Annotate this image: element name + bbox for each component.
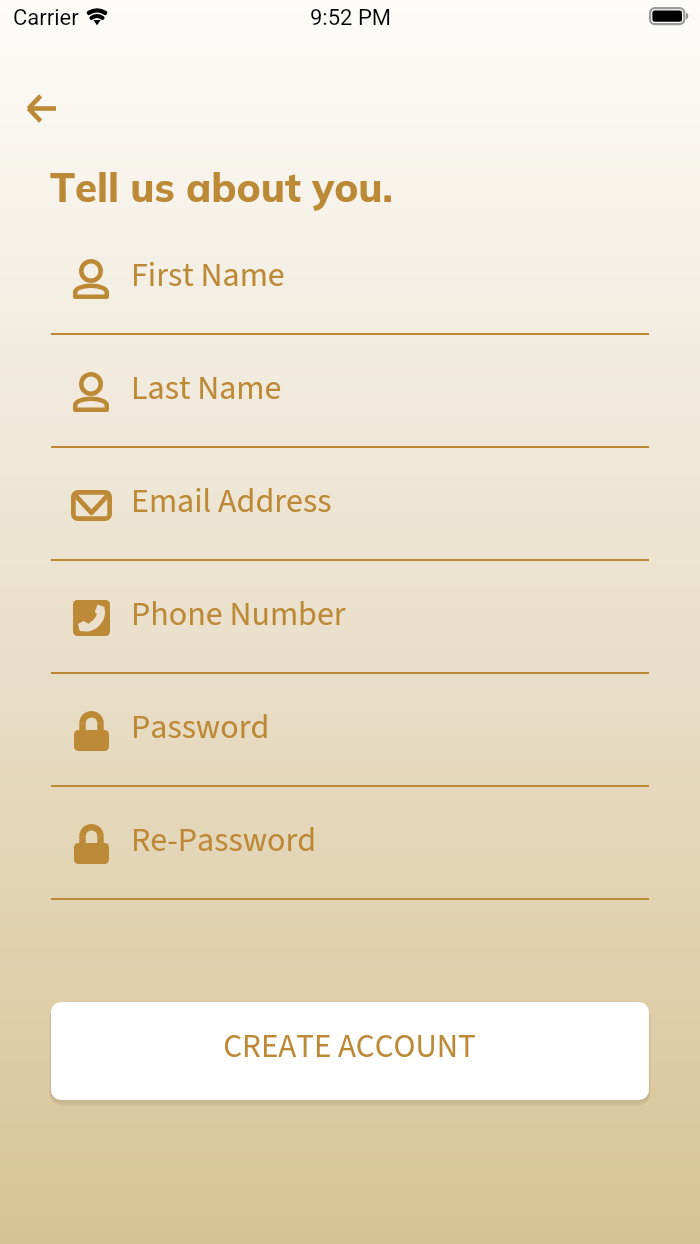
staticText: Phone Number <box>131 590 346 638</box>
button[interactable]: Password <box>0 674 700 787</box>
button[interactable]: Last Name <box>0 335 700 448</box>
staticText: CREATE ACCOUNT <box>223 1023 476 1070</box>
staticText: Password <box>131 703 270 751</box>
button[interactable]: First Name <box>0 222 700 335</box>
button[interactable]: CREATE ACCOUNT <box>51 1002 649 1100</box>
button[interactable]: Back <box>17 84 65 132</box>
staticText: Last Name <box>131 364 282 412</box>
button[interactable]: Re-Password <box>0 787 700 900</box>
button[interactable]: Phone Number <box>0 561 700 674</box>
button[interactable]: Email Address <box>0 448 700 561</box>
staticText: Carrier <box>13 5 79 31</box>
staticText: Re-Password <box>131 816 317 864</box>
staticText: First Name <box>131 251 285 299</box>
staticText: 9:52 PM <box>310 5 391 31</box>
staticText: Email Address <box>131 477 332 525</box>
staticText: Tell us about you. <box>50 162 393 212</box>
